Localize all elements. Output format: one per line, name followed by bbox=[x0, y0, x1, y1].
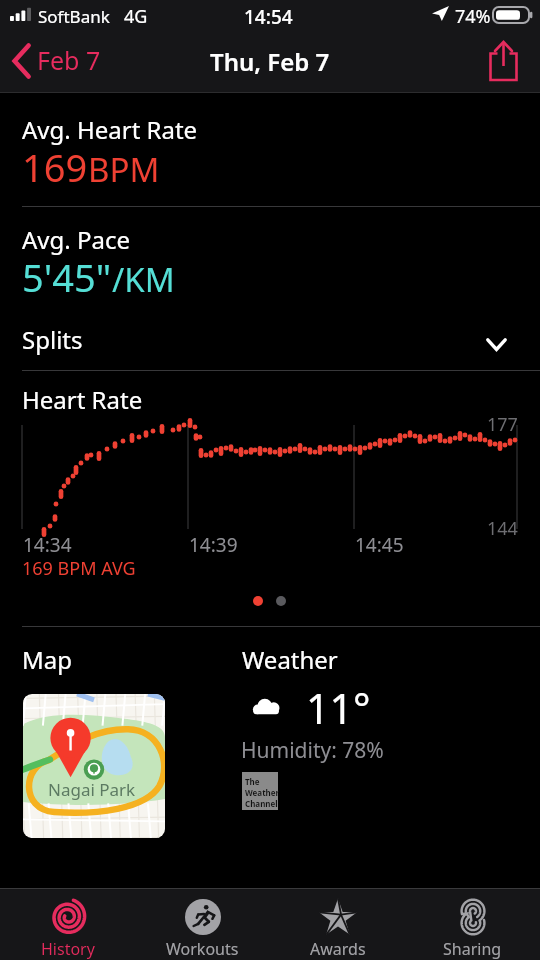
staticText: Weather bbox=[242, 643, 338, 676]
staticText: 177 bbox=[487, 412, 518, 437]
staticText: History bbox=[41, 938, 95, 960]
button[interactable]: History bbox=[0, 889, 135, 960]
staticText: Avg. Pace bbox=[22, 223, 130, 256]
button[interactable]: Awards bbox=[270, 889, 405, 960]
staticText: Splits bbox=[22, 323, 83, 356]
staticText: 11° bbox=[306, 680, 371, 736]
staticText: 144 bbox=[487, 516, 518, 541]
staticText: Map bbox=[22, 643, 72, 676]
staticText: BPM bbox=[88, 147, 160, 192]
staticText: Nagai Park bbox=[48, 778, 136, 801]
staticText: Avg. Heart Rate bbox=[22, 113, 198, 146]
staticText: 14:45 bbox=[355, 532, 404, 558]
staticText: 169 bbox=[22, 141, 88, 193]
staticText: 4G bbox=[124, 4, 148, 29]
button[interactable]: Workouts bbox=[135, 889, 270, 960]
staticText: /KM bbox=[112, 257, 175, 302]
button[interactable]: Map of workout route bbox=[23, 694, 165, 838]
button[interactable]: Avg. Pace bbox=[0, 207, 540, 312]
staticText: Awards bbox=[310, 938, 366, 960]
staticText: Feb 7 bbox=[37, 43, 101, 77]
staticText: 14:54 bbox=[244, 4, 293, 30]
staticText: Channel bbox=[245, 798, 278, 809]
button[interactable]: Splits bbox=[0, 312, 540, 370]
staticText: Heart Rate bbox=[22, 383, 143, 416]
staticText: 74% bbox=[455, 4, 491, 29]
button[interactable]: Avg. Heart Rate bbox=[0, 97, 540, 206]
staticText: 14:34 bbox=[23, 532, 72, 558]
staticText: 169 BPM AVG bbox=[22, 556, 136, 581]
staticText: The bbox=[245, 776, 260, 787]
staticText: Weather bbox=[245, 787, 280, 798]
staticText: Sharing bbox=[443, 938, 502, 960]
staticText: Workouts bbox=[166, 938, 239, 960]
staticText: 14:39 bbox=[189, 532, 238, 558]
button[interactable]: Feb 7 bbox=[11, 42, 101, 80]
staticText: Thu, Feb 7 bbox=[210, 45, 330, 78]
button[interactable]: Sharing bbox=[405, 889, 540, 960]
staticText: SoftBank bbox=[38, 5, 110, 28]
staticText: 5'45" bbox=[22, 251, 112, 303]
staticText: Humidity: 78% bbox=[241, 736, 384, 765]
button[interactable]: Share bbox=[484, 44, 524, 88]
